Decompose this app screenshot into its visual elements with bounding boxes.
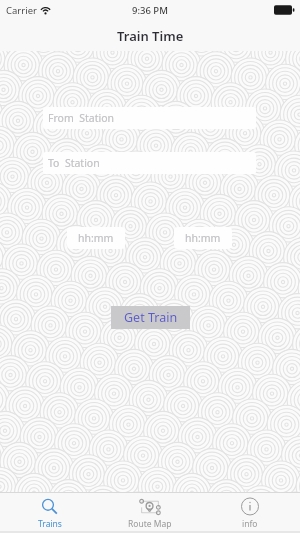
- staticText: Carrier: [6, 4, 37, 17]
- button[interactable]: To Station: [43, 152, 256, 174]
- staticText: To Station: [48, 156, 100, 170]
- button[interactable]: hh:mm: [174, 227, 232, 249]
- staticText: info: [242, 518, 258, 530]
- button[interactable]: Route Map: [100, 493, 200, 531]
- staticText: Train Time: [117, 27, 184, 45]
- staticText: hh:mm: [78, 231, 114, 245]
- staticText: Trains: [38, 518, 62, 530]
- staticText: hh:mm: [185, 231, 221, 245]
- button[interactable]: From Station: [43, 107, 256, 129]
- staticText: 9:36 PM: [132, 4, 168, 17]
- staticText: Route Map: [128, 518, 172, 530]
- button[interactable]: Trains: [0, 493, 100, 531]
- staticText: From Station: [48, 111, 114, 125]
- button[interactable]: hh:mm: [67, 227, 125, 249]
- button[interactable]: info: [200, 493, 300, 531]
- staticText: Get Train: [124, 309, 178, 326]
- button[interactable]: Get Train: [111, 306, 190, 329]
